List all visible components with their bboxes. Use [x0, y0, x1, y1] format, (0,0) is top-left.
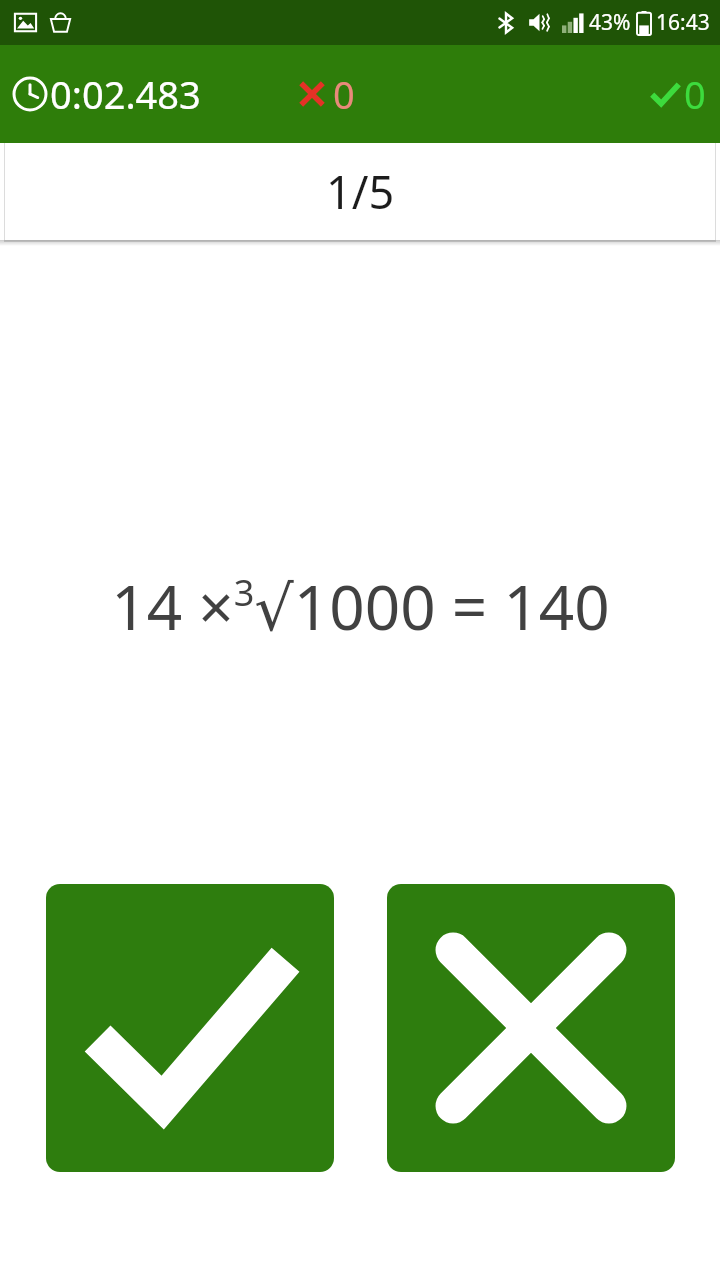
button[interactable]: 1/5: [5, 143, 715, 240]
staticText: 0:02.483: [50, 68, 201, 120]
staticText: 0: [684, 68, 706, 120]
staticText: 43%: [589, 8, 631, 37]
staticText: 1/5: [326, 161, 395, 222]
button[interactable]: 0: [649, 68, 706, 120]
staticText: 16:43: [656, 8, 710, 37]
staticText: 0: [333, 68, 355, 120]
button[interactable]: 0:02.483: [10, 68, 201, 120]
button[interactable]: Wrong: [387, 884, 675, 1172]
staticText: 14 ×3√1000 = 140: [111, 564, 610, 648]
button[interactable]: Correct: [46, 884, 334, 1172]
button[interactable]: 0: [297, 68, 355, 120]
